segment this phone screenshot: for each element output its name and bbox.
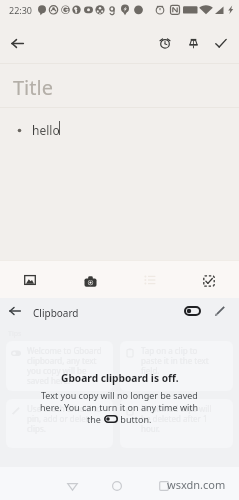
staticText: Unpinned clips will be deleted after 1 h… <box>141 403 212 434</box>
staticText: Title <box>13 74 53 101</box>
button[interactable]: Recent apps <box>151 473 177 499</box>
staticText: here. You can turn it on any time with <box>40 401 199 413</box>
button[interactable]: Add image <box>0 260 60 298</box>
staticText: Tap on a clip to paste it in the text fi… <box>141 345 209 376</box>
staticText: 22:30 <box>9 4 33 16</box>
button[interactable]: Edit clips <box>207 298 233 324</box>
staticText: wsxdn.com <box>167 477 226 492</box>
button[interactable]: Pin note <box>179 29 207 57</box>
button[interactable]: Navigate up <box>3 29 31 57</box>
button[interactable]: Turn on clipboard <box>179 298 205 324</box>
staticText: Clipboard <box>33 306 79 320</box>
button[interactable]: Take photo <box>60 260 120 298</box>
staticText: the <box>87 413 104 425</box>
button[interactable]: Back <box>2 298 28 324</box>
staticText: button. <box>118 413 152 425</box>
button[interactable]: Back <box>59 473 85 499</box>
staticText: Use touch & hold to pin, add or delete c… <box>27 403 102 434</box>
staticText: Welcome to Gboard clipboard, any text yo… <box>27 345 102 386</box>
staticText: Text you copy will no longer be saved <box>41 389 198 401</box>
staticText: hello <box>32 122 60 138</box>
button[interactable]: Done <box>207 29 235 57</box>
button[interactable]: Checkbox list <box>179 260 239 298</box>
button[interactable]: Reminder <box>151 29 179 57</box>
staticText: Gboard clipboard is off. <box>61 371 179 385</box>
button[interactable]: Home <box>104 473 130 499</box>
